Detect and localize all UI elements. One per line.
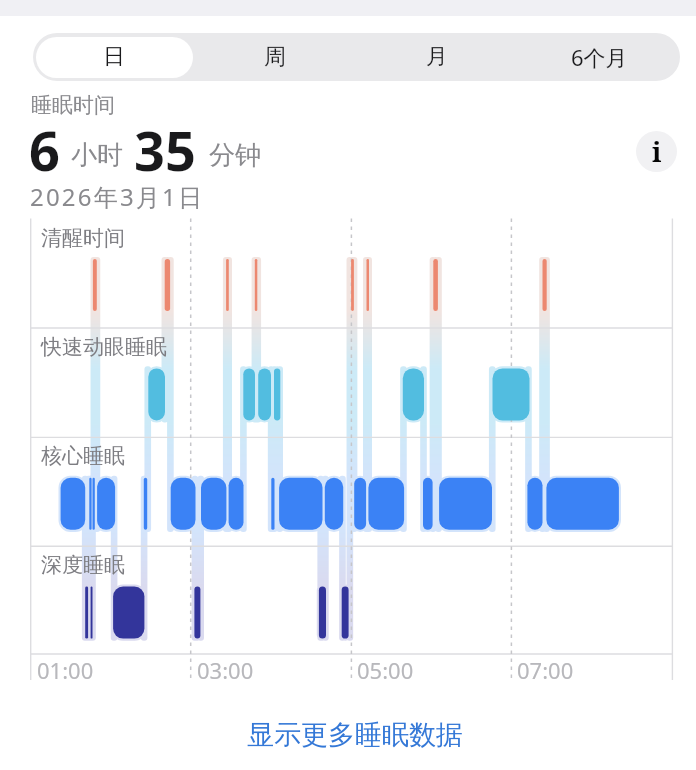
staticText: 07:00 — [517, 655, 574, 685]
staticText: 快速动眼睡眠 — [41, 334, 167, 360]
staticText: 核心睡眠 — [41, 443, 125, 469]
button[interactable]: 日 — [33, 33, 194, 81]
staticText: 小时 — [71, 139, 123, 172]
staticText: 05:00 — [357, 655, 414, 685]
button[interactable]: 6个月 — [518, 33, 680, 81]
button[interactable]: 显示更多睡眠数据 — [7, 718, 696, 752]
staticText: i — [652, 133, 662, 170]
staticText: 周 — [264, 43, 286, 71]
button[interactable]: 周 — [194, 33, 356, 81]
staticText: 日 — [103, 43, 125, 71]
staticText: 6个月 — [571, 42, 628, 72]
button[interactable]: Info — [636, 131, 677, 172]
staticText: 月 — [426, 43, 448, 71]
staticText: 01:00 — [37, 655, 94, 685]
staticText: 03:00 — [197, 655, 254, 685]
staticText: 深度睡眠 — [41, 552, 125, 578]
staticText: 睡眠时间 — [31, 92, 115, 118]
staticText: 显示更多睡眠数据 — [247, 718, 463, 752]
button[interactable]: 月 — [356, 33, 518, 81]
staticText: 35 — [134, 113, 196, 187]
staticText: 6 — [29, 113, 60, 187]
staticText: 2026年3月1日 — [30, 180, 205, 213]
staticText: 清醒时间 — [41, 225, 125, 251]
staticText: 分钟 — [209, 139, 261, 172]
